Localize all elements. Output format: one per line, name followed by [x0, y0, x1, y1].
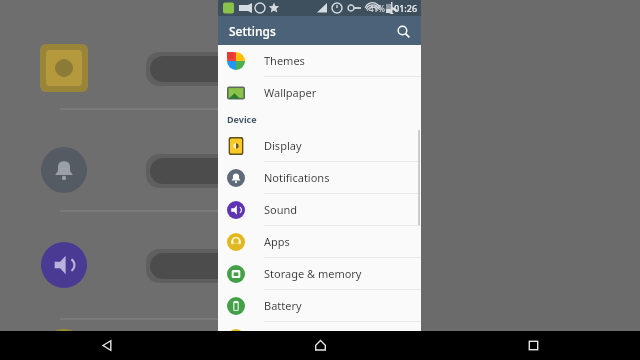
staticText: Battery	[264, 298, 302, 313]
staticText: Lock screen & security	[264, 330, 379, 345]
staticText: Themes	[264, 53, 305, 68]
button[interactable]: Lock screen & security	[218, 322, 421, 353]
button[interactable]: Apps	[218, 226, 421, 257]
button[interactable]: Search	[391, 19, 415, 43]
button[interactable]: Display	[218, 130, 421, 161]
staticText: Notifications	[264, 170, 330, 185]
staticText: Display	[264, 138, 302, 153]
button[interactable]: Themes	[218, 45, 421, 76]
staticText: 41%	[369, 3, 385, 14]
staticText: Sound	[264, 202, 298, 217]
staticText: 01:26	[394, 2, 418, 14]
staticText: Wallpaper	[264, 85, 317, 100]
button[interactable]: Sound	[218, 194, 421, 225]
button[interactable]: Recents	[427, 331, 640, 360]
button[interactable]: Home	[214, 331, 427, 360]
button[interactable]: Back	[0, 331, 214, 360]
staticText: Apps	[264, 234, 290, 249]
button[interactable]: Battery	[218, 290, 421, 321]
button[interactable]: Storage & memory	[218, 258, 421, 289]
staticText: Storage & memory	[264, 266, 362, 281]
staticText: Device	[227, 113, 257, 125]
button[interactable]: Notifications	[218, 162, 421, 193]
button[interactable]: Wallpaper	[218, 77, 421, 108]
staticText: Settings	[229, 23, 276, 39]
